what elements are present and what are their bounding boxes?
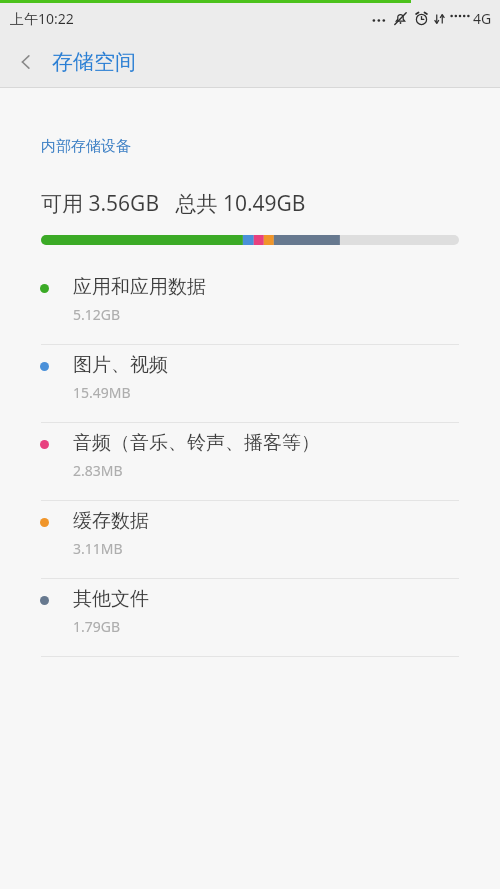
staticText: 4G [473,9,492,28]
staticText: 图片、视频 [73,353,168,377]
button[interactable]: 图片、视频 [0,345,500,422]
staticText: 内部存储设备 [41,137,131,156]
staticText: 音频（音乐、铃声、播客等） [73,431,320,455]
staticText: 存储空间 [52,49,136,75]
staticText: 2.83MB [73,461,123,480]
staticText: 缓存数据 [73,509,149,533]
staticText: 应用和应用数据 [73,275,206,299]
staticText: 可用 3.56GB 总共 10.49GB [41,189,306,218]
button[interactable]: 其他文件 [0,579,500,656]
staticText: 其他文件 [73,587,149,611]
button[interactable]: Back [0,36,500,88]
button[interactable]: 音频（音乐、铃声、播客等） [0,423,500,500]
staticText: 5.12GB [73,305,121,324]
button[interactable]: 应用和应用数据 [0,267,500,344]
staticText: 1.79GB [73,617,121,636]
other: Back [0,36,52,88]
staticText: 15.49MB [73,383,131,402]
button[interactable]: 缓存数据 [0,501,500,578]
staticText: 3.11MB [73,539,123,558]
staticText: 上午10:22 [10,9,74,28]
